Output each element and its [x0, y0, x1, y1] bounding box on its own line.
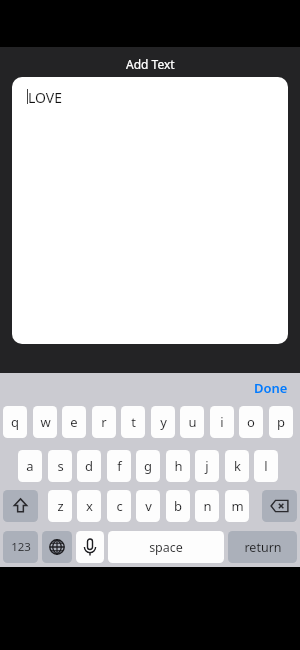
staticText: return — [244, 539, 282, 556]
button[interactable]: Backspace — [262, 490, 297, 522]
button[interactable]: y — [151, 406, 175, 438]
button[interactable]: LOVE — [12, 77, 288, 344]
button[interactable]: space — [108, 531, 224, 563]
button[interactable]: r — [92, 406, 116, 438]
button[interactable]: p — [269, 406, 293, 438]
button[interactable]: Dictation — [76, 531, 104, 563]
staticText: m — [231, 497, 244, 515]
button[interactable]: g — [136, 450, 160, 482]
button[interactable]: i — [210, 406, 234, 438]
button[interactable]: Change keyboard — [42, 531, 72, 563]
button[interactable]: x — [77, 490, 101, 522]
staticText: space — [149, 539, 183, 556]
staticText: e — [70, 413, 78, 431]
button[interactable]: a — [18, 450, 42, 482]
staticText: d — [85, 457, 93, 475]
staticText: w — [40, 413, 51, 431]
button[interactable]: 123 — [3, 531, 38, 563]
staticText: l — [264, 457, 268, 475]
staticText: g — [144, 457, 152, 475]
button[interactable]: l — [254, 450, 278, 482]
button[interactable]: o — [239, 406, 263, 438]
button[interactable]: Shift — [3, 490, 38, 522]
staticText: h — [174, 457, 183, 475]
button[interactable]: v — [136, 490, 160, 522]
staticText: Add Text — [126, 56, 175, 72]
button[interactable]: q — [3, 406, 27, 438]
staticText: 123 — [11, 539, 31, 555]
button[interactable]: m — [225, 490, 249, 522]
button[interactable]: j — [195, 450, 219, 482]
button[interactable]: f — [107, 450, 131, 482]
button[interactable]: d — [77, 450, 101, 482]
button[interactable]: e — [62, 406, 86, 438]
staticText: t — [131, 413, 136, 431]
staticText: r — [101, 413, 107, 431]
staticText: v — [145, 497, 152, 515]
staticText: u — [188, 413, 197, 431]
staticText: p — [277, 413, 285, 431]
staticText: o — [247, 413, 255, 431]
staticText: z — [57, 497, 64, 515]
button[interactable]: w — [33, 406, 57, 438]
staticText: k — [234, 457, 241, 475]
staticText: j — [205, 457, 209, 475]
staticText: n — [203, 497, 212, 515]
button[interactable]: t — [121, 406, 145, 438]
staticText: f — [117, 457, 122, 475]
button[interactable]: b — [166, 490, 190, 522]
button[interactable]: return — [228, 531, 297, 563]
staticText: Done — [254, 379, 288, 397]
button[interactable]: Done — [240, 376, 295, 400]
button[interactable]: c — [107, 490, 131, 522]
button[interactable]: h — [166, 450, 190, 482]
button[interactable]: s — [48, 450, 72, 482]
button[interactable]: k — [225, 450, 249, 482]
staticText: i — [220, 413, 224, 431]
staticText: c — [116, 497, 123, 515]
button[interactable]: n — [195, 490, 219, 522]
staticText: a — [26, 457, 34, 475]
staticText: LOVE — [28, 88, 63, 107]
button[interactable]: z — [48, 490, 72, 522]
staticText: x — [86, 497, 93, 515]
staticText: s — [57, 457, 64, 475]
staticText: y — [160, 413, 167, 431]
button[interactable]: u — [180, 406, 204, 438]
staticText: q — [11, 413, 19, 431]
staticText: b — [174, 497, 182, 515]
